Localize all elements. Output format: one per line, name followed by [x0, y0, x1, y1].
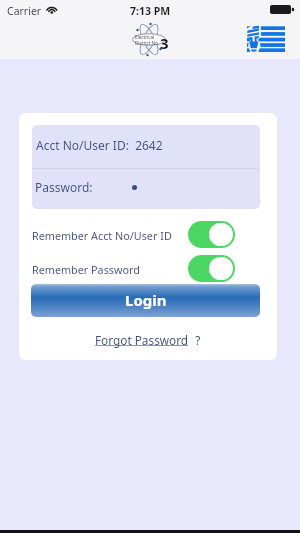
button[interactable]: Forgot Password: [95, 332, 201, 348]
staticText: Acct No/User ID: 2642: [36, 137, 163, 153]
staticText: ?: [189, 332, 201, 348]
staticText: 7:13 PM: [130, 4, 171, 18]
button[interactable]: Acct No/User ID: 2642: [32, 125, 260, 168]
staticText: 3: [160, 33, 169, 53]
staticText: Remember Acct No/User ID: [32, 228, 188, 243]
staticText: District No.: [135, 40, 160, 46]
staticText: Password:: [35, 179, 93, 195]
staticText: Electrical: [135, 34, 155, 40]
button[interactable]: Menu: [247, 26, 285, 52]
staticText: Login: [125, 290, 167, 310]
staticText: Remember Password: [32, 262, 188, 277]
staticText: Forgot Password: [95, 332, 189, 348]
button[interactable]: Password:: [32, 169, 260, 209]
staticText: Carrier: [7, 4, 42, 18]
button[interactable]: Remember Password: [32, 255, 235, 282]
button[interactable]: Remember Acct No/User ID: [32, 221, 235, 248]
button[interactable]: Login: [31, 284, 260, 317]
